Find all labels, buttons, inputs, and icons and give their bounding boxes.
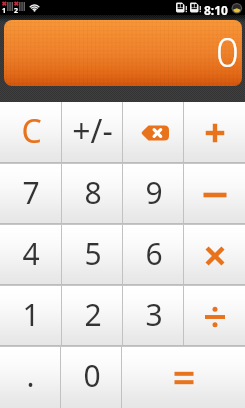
staticText: 1 — [2, 6, 7, 16]
button[interactable]: 6 — [123, 225, 184, 286]
button[interactable]: . — [0, 347, 61, 408]
button[interactable]: 1 — [0, 286, 62, 347]
staticText: 5 — [84, 233, 102, 274]
button[interactable]: Divide — [184, 286, 245, 347]
staticText: C — [21, 109, 42, 153]
staticText: +/- — [72, 109, 113, 153]
button[interactable]: 7 — [0, 164, 62, 225]
staticText: . — [26, 355, 35, 396]
button[interactable]: 3 — [123, 286, 184, 347]
button[interactable]: Minus — [184, 164, 245, 225]
button[interactable]: Multiply — [184, 225, 245, 286]
staticText: 3 — [145, 294, 163, 335]
staticText: 0 — [216, 24, 239, 78]
staticText: 2 — [14, 6, 19, 16]
button[interactable]: 9 — [123, 164, 184, 225]
button[interactable]: 0 — [61, 347, 122, 408]
button[interactable]: C — [0, 102, 62, 164]
staticText: 2 — [84, 294, 102, 335]
staticText: 8:10 — [204, 2, 228, 17]
staticText: 8 — [84, 172, 102, 213]
staticText: 9 — [145, 172, 163, 213]
staticText: 6 — [145, 233, 163, 274]
staticText: 7 — [22, 172, 40, 213]
button[interactable]: 8 — [62, 164, 123, 225]
staticText: 1 — [22, 294, 40, 335]
button[interactable]: 4 — [0, 225, 62, 286]
staticText: 0 — [83, 355, 101, 396]
button[interactable]: 5 — [62, 225, 123, 286]
button[interactable]: Delete — [123, 102, 184, 164]
button[interactable]: Plus — [184, 102, 245, 164]
button[interactable]: +/- — [62, 102, 123, 164]
button[interactable]: 2 — [62, 286, 123, 347]
staticText: 4 — [22, 233, 40, 274]
button[interactable]: Equals — [122, 347, 245, 408]
